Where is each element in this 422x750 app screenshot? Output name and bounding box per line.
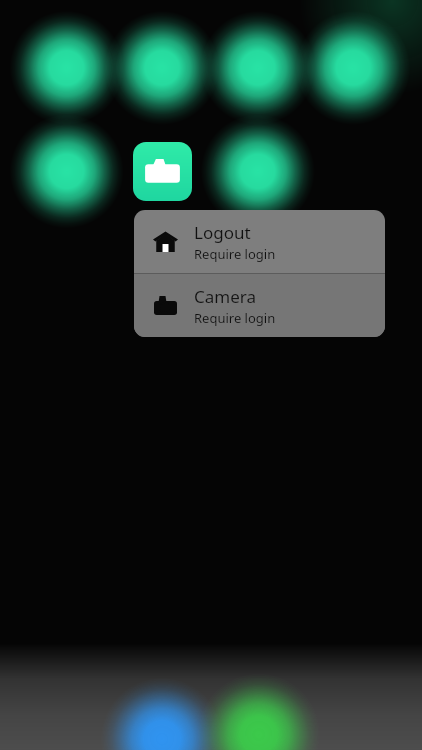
other: Camera	[148, 296, 182, 315]
button[interactable]: Camera	[134, 274, 385, 337]
staticText: Require login	[194, 309, 276, 327]
staticText: Camera	[194, 285, 256, 308]
staticText: Logout	[194, 221, 251, 244]
other: Logout	[148, 231, 182, 252]
button[interactable]: Logout	[134, 210, 385, 273]
button[interactable]: Camera app	[133, 142, 192, 201]
staticText: Require login	[194, 245, 276, 263]
